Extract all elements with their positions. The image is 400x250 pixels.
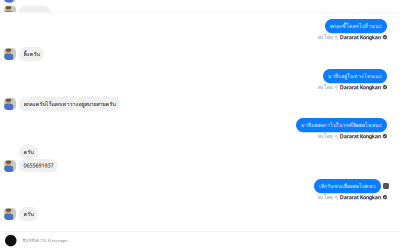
staticText: ดิ้งครับ bbox=[23, 50, 39, 58]
staticText: Dararat Kongkan bbox=[340, 84, 381, 91]
button[interactable]: ครับ bbox=[19, 145, 38, 159]
staticText: ครับ bbox=[23, 148, 33, 156]
staticText: Dararat Kongkan bbox=[340, 194, 381, 201]
staticText: มาถึงอยู่ในทางไหนนะ bbox=[328, 72, 382, 80]
staticText: Dararat Kongkan bbox=[340, 34, 381, 41]
staticText: ส่งโดย ๆ bbox=[318, 33, 338, 41]
staticText: Dararat Kongkan bbox=[340, 133, 381, 140]
button[interactable]: 0655691937 bbox=[19, 159, 58, 172]
button[interactable]: Profile photo bbox=[4, 160, 16, 172]
staticText: ส่งโดย ๆ bbox=[318, 83, 338, 91]
staticText: พิมพ์ข้อความ Messenger... bbox=[22, 237, 69, 244]
staticText: ตกลงครับไว้แลกเท่าวางอยู่สบายสายครับ bbox=[23, 100, 115, 108]
staticText: ส่งโดย ๆ bbox=[318, 193, 338, 201]
staticText: 0655691937 bbox=[23, 162, 53, 169]
button[interactable]: Profile photo bbox=[4, 208, 16, 220]
button[interactable]: ตกลงครับไว้แลกเท่าวางอยู่สบายสายครับ bbox=[19, 97, 120, 111]
staticText: ส่งโดย ๆ bbox=[318, 132, 338, 140]
staticText: ตกลงชี้โคตรไปร้านนะ bbox=[330, 22, 382, 30]
button[interactable]: Profile photo bbox=[4, 98, 16, 110]
staticText: เลิกวันชนเดือดต่อไปคหะ bbox=[319, 182, 376, 190]
staticText: มาถึงสอดภาไปในรถที่ติดต่อไหลนะ bbox=[301, 121, 382, 129]
button[interactable]: Your profile bbox=[5, 235, 16, 246]
button[interactable]: พิมพ์ข้อความ Messenger... bbox=[22, 237, 208, 244]
button[interactable]: Profile photo bbox=[4, 48, 16, 60]
staticText: ครับ bbox=[23, 210, 33, 218]
button[interactable]: ดิ้งครับ bbox=[19, 47, 44, 61]
button[interactable]: มาถึงอยู่ในทางไหนนะ bbox=[323, 69, 387, 83]
button[interactable]: ตกลงชี้โคตรไปร้านนะ bbox=[325, 19, 387, 33]
button[interactable]: มาถึงสอดภาไปในรถที่ติดต่อไหลนะ bbox=[296, 118, 387, 132]
button[interactable]: ครับ bbox=[19, 207, 38, 221]
button[interactable]: เลิกวันชนเดือดต่อไปคหะ bbox=[314, 179, 381, 193]
